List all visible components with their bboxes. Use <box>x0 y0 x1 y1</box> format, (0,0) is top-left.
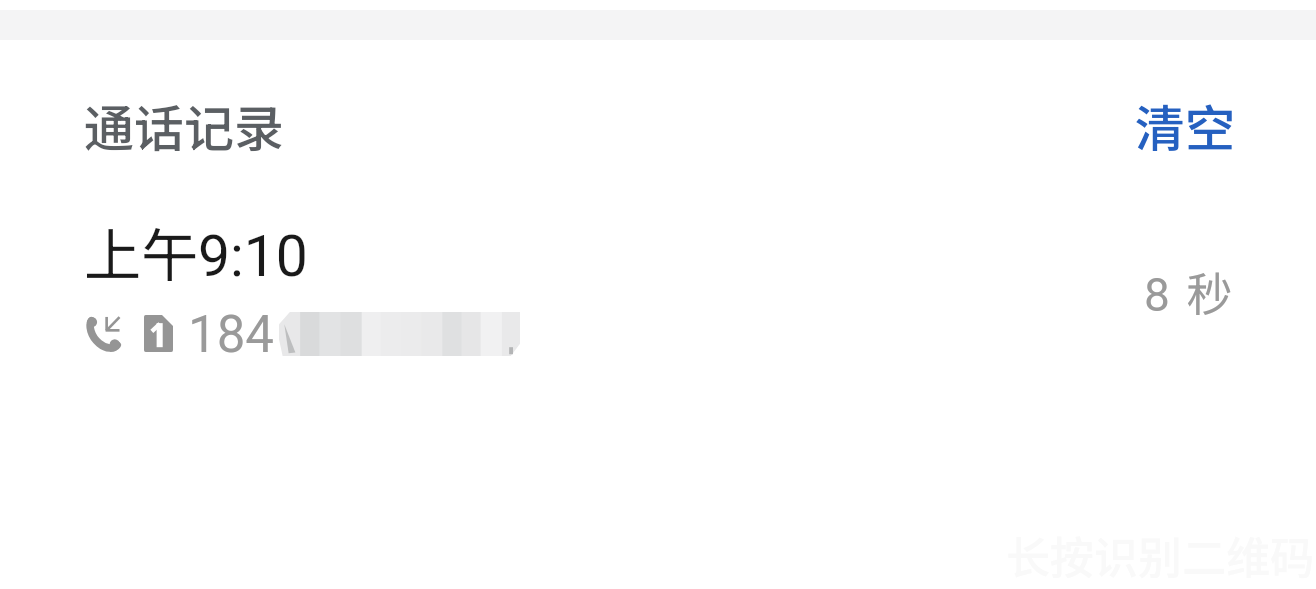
staticText: 通话记录 <box>84 89 284 161</box>
staticText: 上午9:10 <box>84 210 308 293</box>
button[interactable]: 上午9:10 <box>0 200 1316 370</box>
staticText: 184 <box>188 305 274 365</box>
other: Incoming call <box>86 315 122 351</box>
staticText: 清空 <box>1135 89 1235 161</box>
staticText: 8 秒 <box>1144 258 1236 325</box>
other: SIM card 1 <box>144 315 173 352</box>
button[interactable]: 通话记录 <box>68 80 300 170</box>
button[interactable]: 清空 <box>1119 80 1251 170</box>
